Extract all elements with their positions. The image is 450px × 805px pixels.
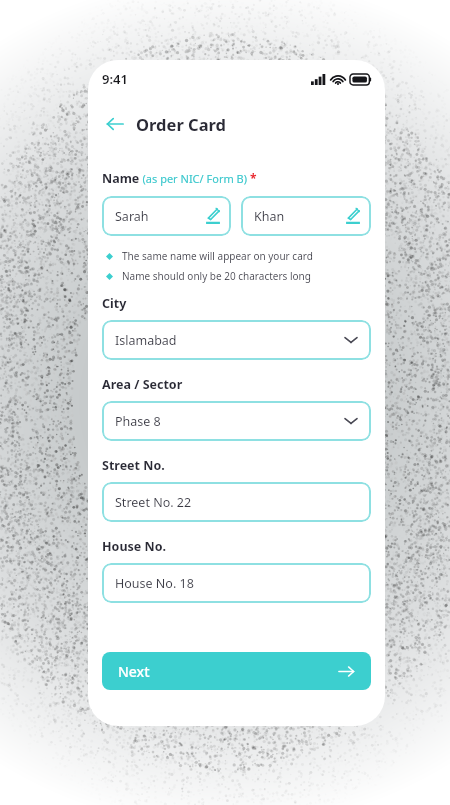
staticText: Name (as per NIC/ Form B) * xyxy=(102,170,257,187)
staticText: 9:41 xyxy=(102,70,128,88)
other: Open dropdown xyxy=(345,336,357,344)
button[interactable]: Street No. 22 xyxy=(102,482,371,522)
staticText: Area / Sector xyxy=(102,376,183,393)
button[interactable]: Islamabad xyxy=(102,320,371,360)
staticText: Street No. xyxy=(102,457,165,474)
button[interactable]: Phase 8 xyxy=(102,401,371,441)
staticText: Order Card xyxy=(136,113,226,135)
other: Edit xyxy=(206,208,220,224)
staticText: House No. 18 xyxy=(115,575,194,592)
staticText: The same name will appear on your card xyxy=(122,249,313,263)
staticText: City xyxy=(102,295,127,312)
button[interactable]: Khan xyxy=(241,196,371,236)
staticText: Phase 8 xyxy=(115,413,161,430)
other: Edit xyxy=(346,208,360,224)
staticText: House No. xyxy=(102,538,166,555)
staticText: Name should only be 20 characters long xyxy=(122,269,311,283)
button[interactable]: Back xyxy=(102,111,128,137)
other: Open dropdown xyxy=(345,417,357,425)
button[interactable]: Sarah xyxy=(102,196,231,236)
staticText: Khan xyxy=(254,208,285,225)
staticText: Sarah xyxy=(115,208,149,225)
staticText: Street No. 22 xyxy=(115,494,192,511)
staticText: Islamabad xyxy=(115,332,177,349)
button[interactable]: House No. 18 xyxy=(102,563,371,603)
staticText: Next xyxy=(118,662,150,681)
button[interactable]: Next xyxy=(102,652,371,690)
